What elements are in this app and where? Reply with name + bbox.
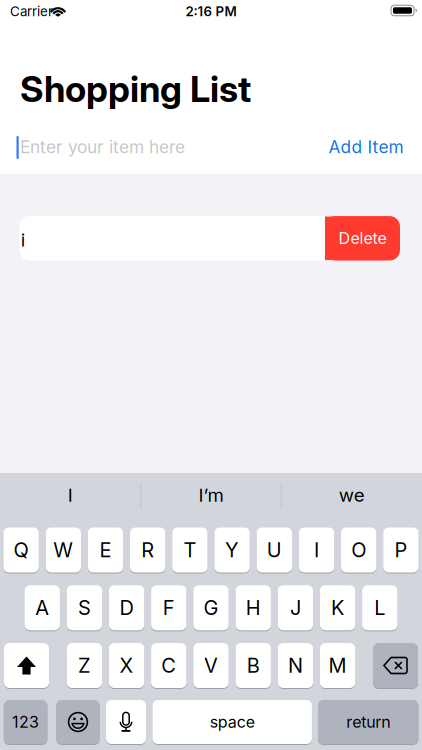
button[interactable]: O (341, 527, 376, 573)
button[interactable]: E (88, 527, 123, 573)
button[interactable]: V (193, 642, 229, 688)
button[interactable]: C (151, 642, 186, 688)
button[interactable]: T (172, 527, 208, 573)
staticText: F (163, 596, 175, 620)
staticText: Q (14, 538, 29, 562)
button[interactable]: S (67, 585, 102, 631)
staticText: W (53, 538, 73, 562)
staticText: T (183, 538, 196, 562)
button[interactable]: i (20, 216, 400, 261)
staticText: return (346, 713, 390, 731)
button[interactable]: space (152, 699, 312, 744)
button[interactable]: G (193, 585, 229, 631)
button[interactable]: X (109, 642, 144, 688)
staticText: D (120, 596, 134, 620)
staticText: H (246, 596, 261, 620)
button[interactable]: P (383, 527, 419, 573)
staticText: V (204, 654, 218, 677)
button[interactable]: M (320, 642, 355, 688)
staticText: U (267, 538, 282, 562)
staticText: L (374, 596, 385, 620)
staticText: N (288, 654, 303, 677)
staticText: B (247, 654, 260, 677)
staticText: Delete (338, 229, 386, 248)
staticText: Carrier (10, 4, 53, 19)
button[interactable]: K (320, 585, 355, 631)
button[interactable]: B (235, 642, 271, 688)
staticText: J (290, 596, 301, 620)
staticText: C (161, 654, 176, 677)
staticText: O (351, 538, 366, 562)
staticText: 123 (12, 713, 39, 731)
staticText: Add Item (328, 137, 403, 157)
button[interactable]: Delete (373, 642, 418, 688)
staticText: R (141, 538, 154, 562)
staticText: K (331, 596, 344, 620)
staticText: 2:16 PM (185, 4, 236, 19)
button[interactable]: D (109, 585, 144, 631)
staticText: Y (225, 538, 239, 562)
button[interactable]: Enter your item here (20, 129, 320, 165)
staticText: G (203, 596, 218, 620)
button[interactable]: W (46, 527, 81, 573)
staticText: space (210, 713, 255, 731)
staticText: S (78, 596, 91, 620)
staticText: E (99, 538, 111, 562)
button[interactable]: return (318, 699, 418, 744)
button[interactable]: Delete (325, 216, 400, 261)
button[interactable]: H (235, 585, 271, 631)
button[interactable]: I (299, 527, 334, 573)
button[interactable]: F (151, 585, 186, 631)
staticText: Shopping List (20, 68, 251, 110)
staticText: Enter your item here (20, 137, 185, 157)
staticText: i (21, 229, 26, 251)
button[interactable]: U (257, 527, 292, 573)
staticText: Z (78, 654, 91, 677)
button[interactable]: Add Item (273, 129, 403, 165)
button[interactable]: I’m (146, 475, 276, 515)
staticText: I’m (198, 484, 223, 506)
button[interactable]: A (24, 585, 60, 631)
button[interactable]: N (278, 642, 313, 688)
button[interactable]: we (287, 475, 417, 515)
staticText: we (339, 484, 365, 506)
button[interactable]: I (5, 475, 135, 515)
button[interactable]: 123 (4, 699, 47, 744)
button[interactable]: L (362, 585, 397, 631)
staticText: A (35, 596, 49, 620)
button[interactable]: Dictate (106, 699, 146, 744)
staticText: I (68, 484, 73, 506)
staticText: P (394, 538, 407, 562)
button[interactable]: Q (3, 527, 39, 573)
staticText: M (329, 654, 347, 677)
button[interactable]: Y (214, 527, 250, 573)
staticText: X (120, 654, 134, 677)
staticText: I (314, 538, 319, 562)
button[interactable]: Shift (4, 642, 49, 688)
button[interactable]: J (278, 585, 313, 631)
button[interactable]: R (130, 527, 165, 573)
button[interactable]: Z (67, 642, 102, 688)
button[interactable]: Emoji (56, 699, 100, 744)
